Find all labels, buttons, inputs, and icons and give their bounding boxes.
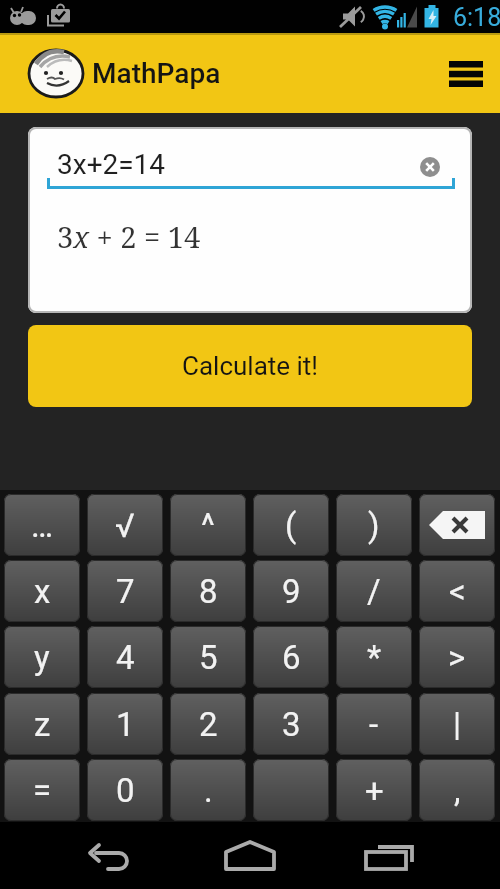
staticText: 6 (282, 638, 301, 677)
staticText: 0 (116, 771, 135, 810)
button[interactable]: = (4, 759, 80, 821)
button[interactable] (412, 149, 448, 185)
staticText: ^ (201, 506, 215, 545)
staticText: / (367, 572, 381, 611)
button[interactable]: - (336, 693, 412, 755)
staticText: x (34, 572, 51, 611)
staticText: ( (285, 506, 297, 545)
button[interactable]: 3x+2=14 (45, 135, 455, 191)
button[interactable]: ^ (170, 494, 246, 556)
staticText: 5 (199, 638, 218, 677)
button[interactable]: 0 (87, 759, 163, 821)
staticText: 6:18 (453, 3, 500, 32)
button[interactable]: | (419, 693, 495, 755)
staticText: > (448, 638, 466, 677)
staticText: 4 (116, 638, 135, 677)
staticText: √ (115, 506, 135, 545)
button[interactable]: x (4, 560, 80, 622)
button[interactable]: < (419, 560, 495, 622)
staticText: ) (368, 506, 380, 545)
button[interactable]: 8 (170, 560, 246, 622)
button[interactable]: + (336, 759, 412, 821)
button[interactable]: √ (87, 494, 163, 556)
button[interactable]: Calculate it! (28, 325, 472, 407)
button[interactable]: > (419, 626, 495, 688)
staticText: y (34, 638, 50, 677)
button[interactable]: y (4, 626, 80, 688)
button[interactable]: . (170, 759, 246, 821)
button[interactable] (76, 822, 144, 889)
staticText: 2 (199, 705, 218, 744)
staticText: MathPapa (92, 57, 221, 90)
button[interactable] (216, 822, 284, 889)
button[interactable]: 1 (87, 693, 163, 755)
staticText: 3 (282, 705, 301, 744)
staticText: 8 (199, 572, 218, 611)
button[interactable]: 3 (253, 693, 329, 755)
staticText: 3x+2=14 (57, 148, 166, 181)
button[interactable]: 9 (253, 560, 329, 622)
button[interactable]: , (419, 759, 495, 821)
staticText: 7 (116, 572, 135, 611)
staticText: 9 (282, 572, 301, 611)
staticText: … (31, 506, 54, 545)
staticText: 1 (116, 705, 135, 744)
button[interactable]: * (336, 626, 412, 688)
button[interactable] (356, 822, 424, 889)
button[interactable]: 5 (170, 626, 246, 688)
staticText: , (454, 771, 461, 810)
staticText: - (369, 705, 379, 744)
button[interactable]: … (4, 494, 80, 556)
button[interactable] (253, 759, 329, 821)
staticText: . (204, 771, 213, 810)
staticText: < (449, 572, 466, 611)
button[interactable]: 6 (253, 626, 329, 688)
button[interactable]: ) (336, 494, 412, 556)
button[interactable]: 2 (170, 693, 246, 755)
button[interactable] (419, 494, 495, 556)
staticText: * (367, 638, 382, 677)
staticText: Calculate it! (182, 351, 319, 381)
button[interactable]: 4 (87, 626, 163, 688)
button[interactable] (438, 49, 494, 99)
button[interactable]: z (4, 693, 80, 755)
staticText: = (33, 771, 52, 810)
button[interactable]: ( (253, 494, 329, 556)
button[interactable]: / (336, 560, 412, 622)
button[interactable]: 7 (87, 560, 163, 622)
staticText: | (453, 705, 462, 744)
staticText: 3x + 2 = 14 (57, 217, 201, 256)
staticText: z (34, 705, 51, 744)
staticText: + (365, 771, 384, 810)
